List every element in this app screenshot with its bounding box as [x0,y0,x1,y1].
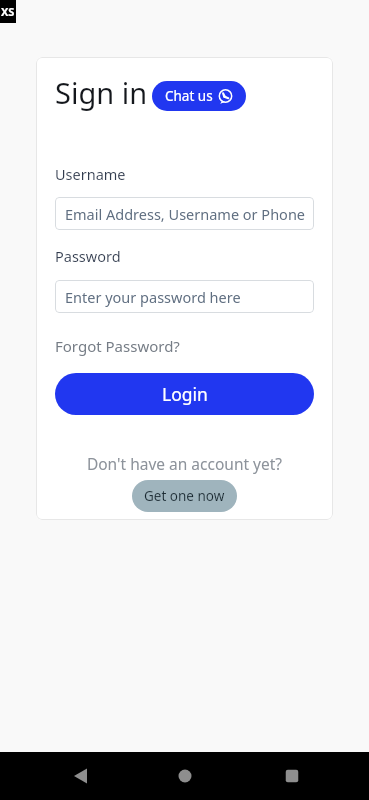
button[interactable]: Get one now [132,480,237,512]
staticText: Username [55,164,126,184]
button[interactable]: Forgot Password? [55,336,180,356]
button[interactable]: Chat us [152,81,246,111]
staticText: Don't have an account yet? [55,453,314,474]
staticText: Get one now [144,487,225,505]
button[interactable]: Enter your password here [55,280,314,313]
staticText: Login [162,382,208,406]
staticText: Enter your password here [65,287,241,307]
staticText: Chat us [165,87,213,105]
staticText: XS [1,4,15,19]
button[interactable]: Email Address, Username or Phone Nu [55,197,314,230]
button[interactable] [280,764,304,788]
staticText: Sign in [55,73,148,112]
staticText: Email Address, Username or Phone Nu [65,204,314,224]
button[interactable]: Login [55,373,314,415]
button[interactable] [69,764,93,788]
button[interactable] [173,764,197,788]
staticText: Password [55,246,121,266]
